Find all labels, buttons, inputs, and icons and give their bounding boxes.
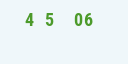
staticText: 0 xyxy=(74,9,84,30)
staticText: 6 xyxy=(84,9,94,30)
staticText: 5 xyxy=(45,9,55,30)
staticText: 4 xyxy=(25,9,35,30)
